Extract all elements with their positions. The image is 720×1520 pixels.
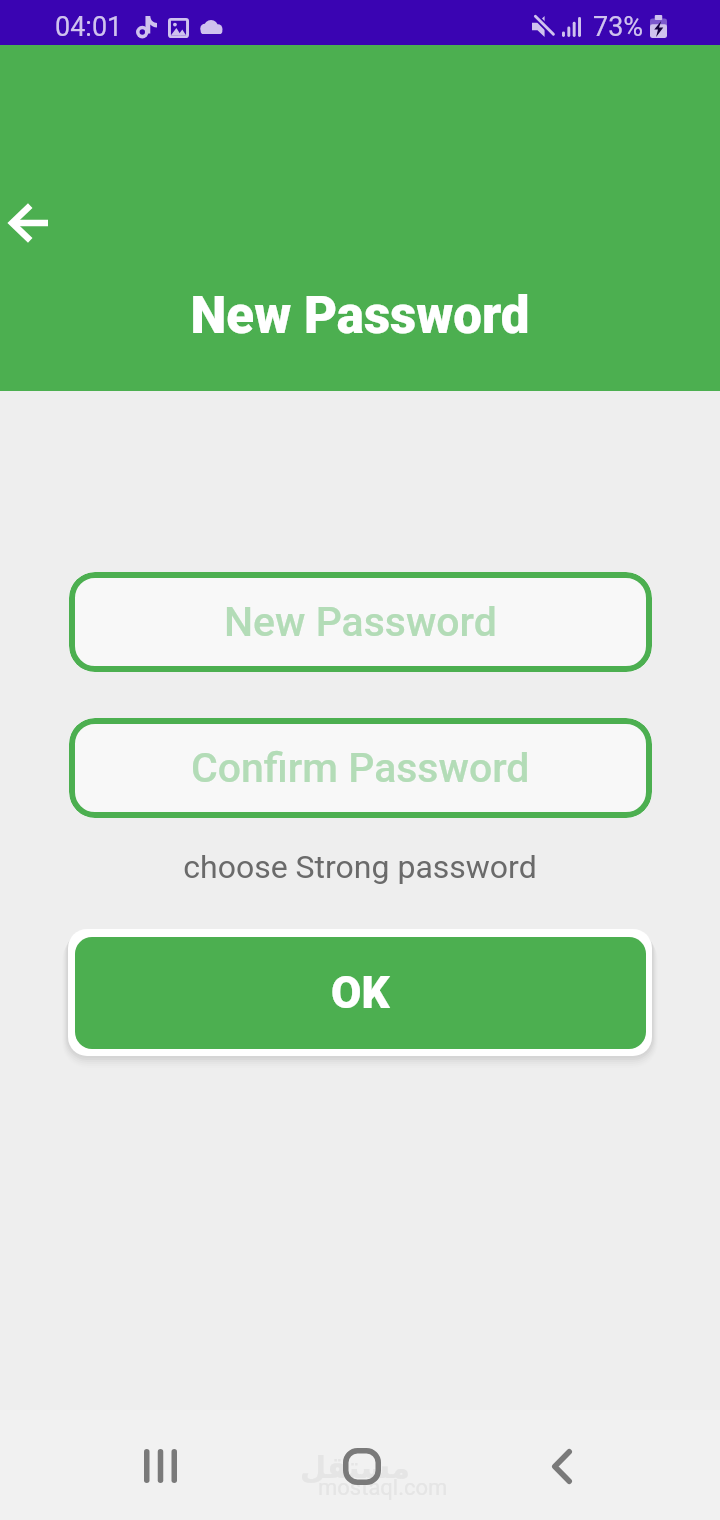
staticText: مستقل [300,1450,720,1485]
button[interactable]: Back [522,1426,602,1506]
staticText: New Password [224,598,497,646]
button[interactable]: Back [0,191,58,255]
staticText: OK [331,967,390,1019]
staticText: choose Strong password [0,848,720,886]
staticText: mostaql.com [318,1475,448,1501]
staticText: Confirm Password [191,744,530,792]
button[interactable]: Confirm Password [69,718,652,818]
button[interactable]: OK [75,937,646,1049]
staticText: New Password [0,286,720,346]
button[interactable]: Home [322,1426,402,1506]
button[interactable]: Recent apps [120,1426,200,1506]
staticText: 04:01 [55,11,123,43]
button[interactable]: New Password [69,572,652,672]
staticText: 73% [593,11,644,43]
